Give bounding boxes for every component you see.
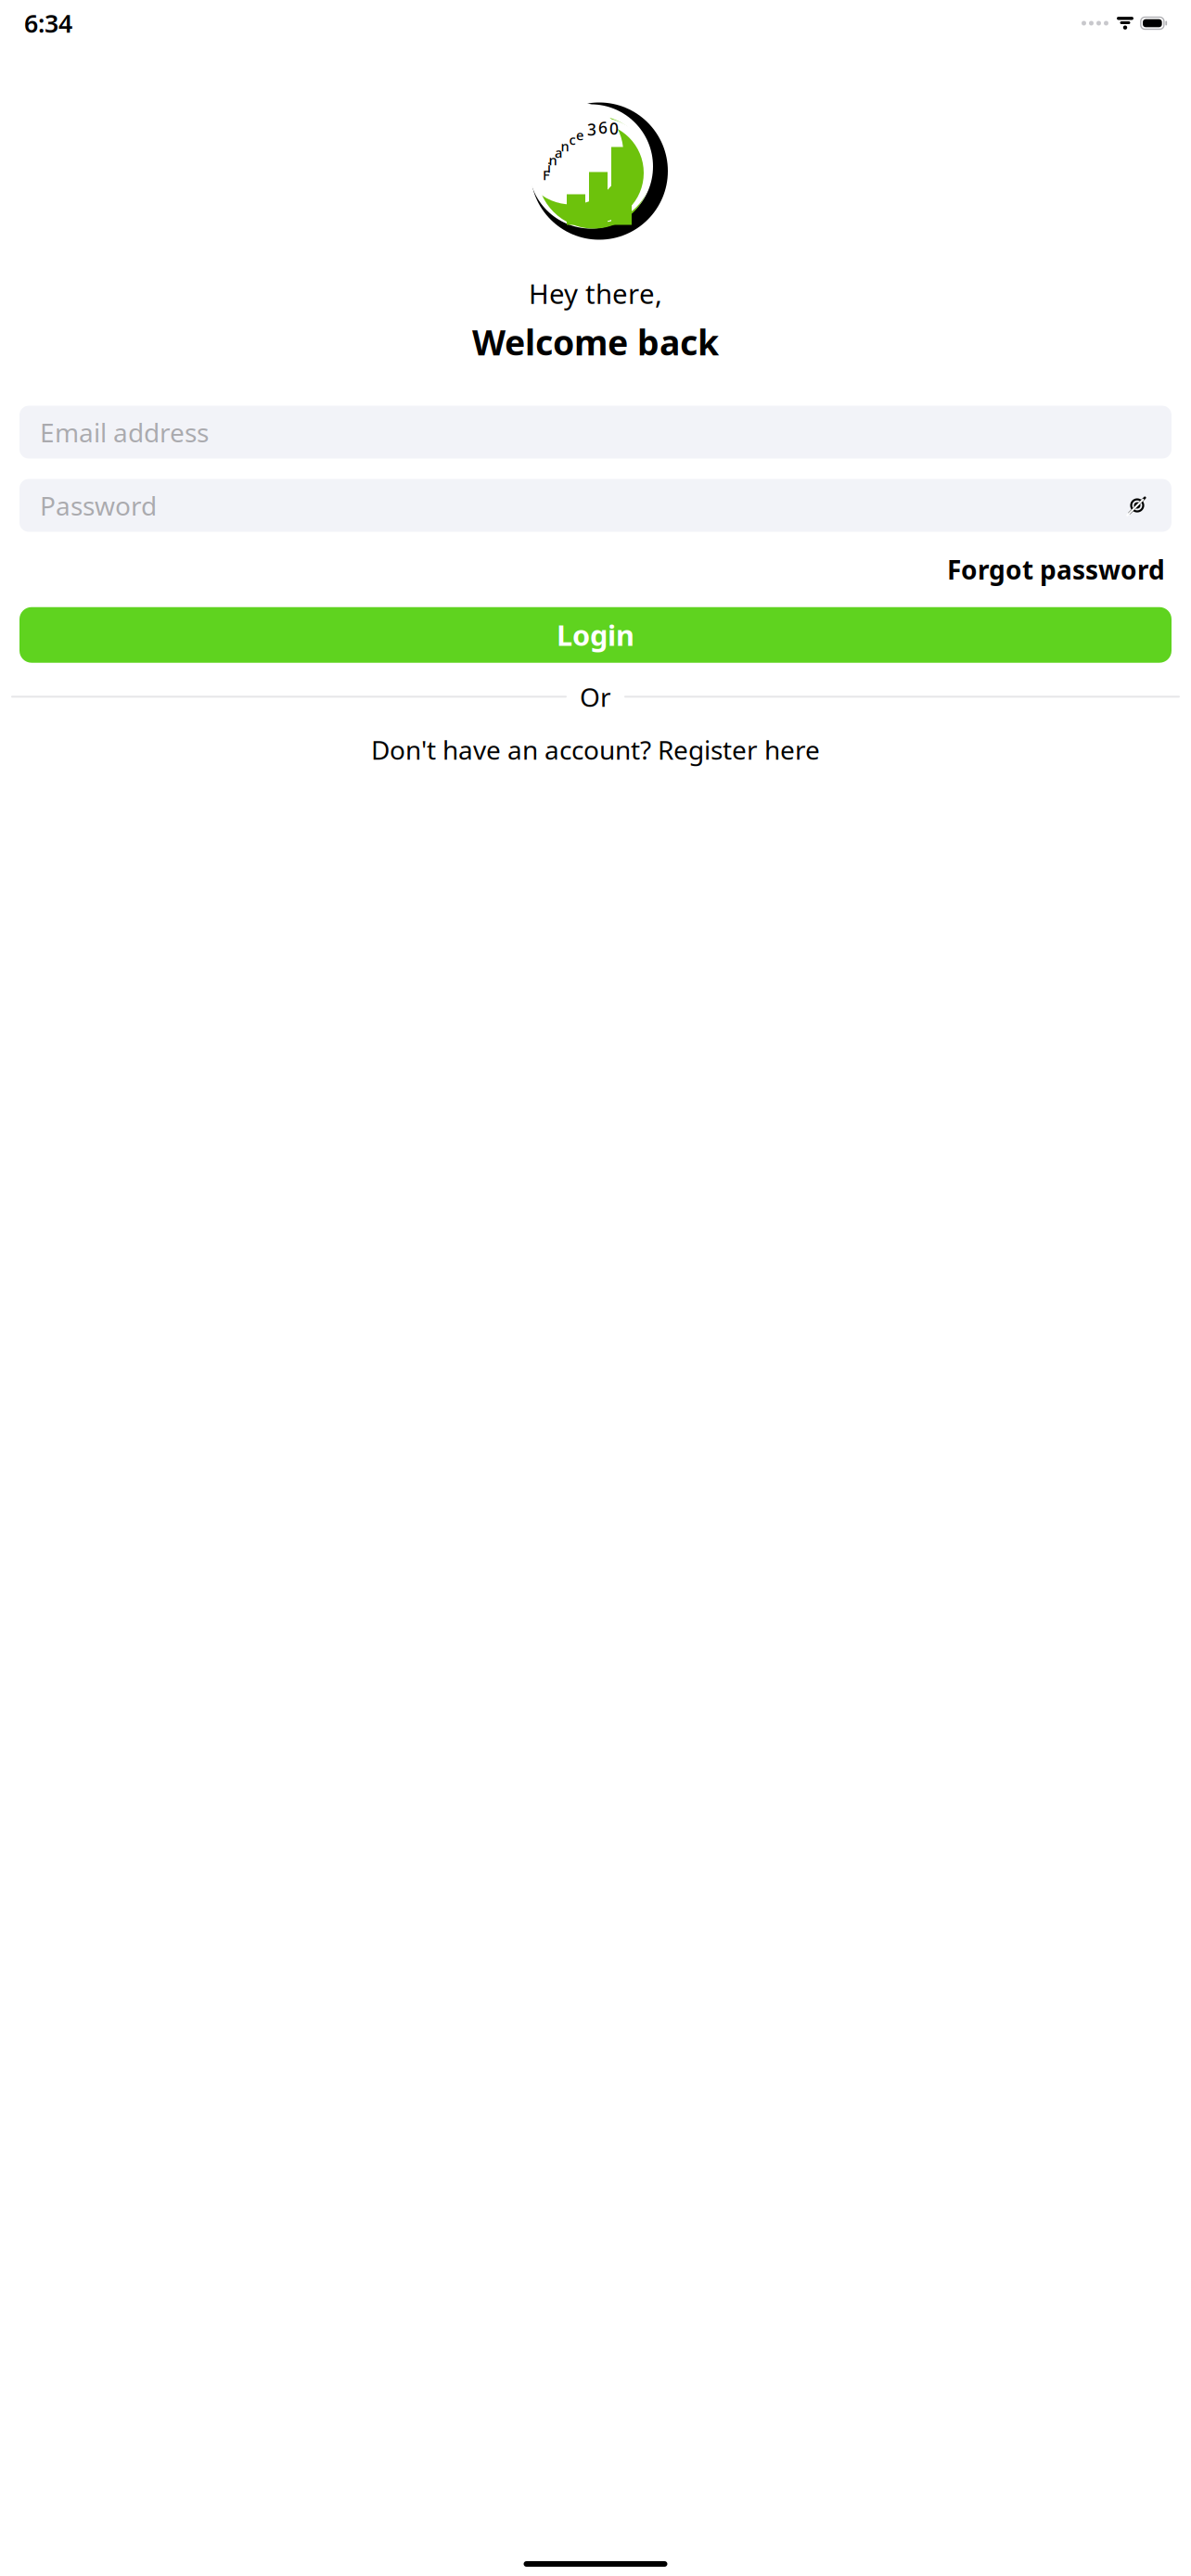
button[interactable]: Show password [1123,491,1151,519]
staticText: c [569,131,576,149]
staticText: Don't have an account? Register here [371,732,820,767]
staticText: n [549,151,557,169]
staticText: n [561,137,569,155]
staticText: 6:34 [24,7,72,40]
staticText: Forgot password [947,552,1165,587]
button[interactable]: Forgot password [947,552,1165,587]
staticText: Or [580,679,611,714]
staticText: Password [40,488,157,523]
staticText: Hey there, [529,275,662,312]
staticText: F [543,166,550,184]
staticText: i [547,158,551,176]
staticText: Login [557,616,634,654]
staticText: a [555,144,562,162]
staticText: Welcome back [472,319,719,365]
button[interactable]: Email address [19,406,1172,459]
staticText: 3 [587,119,596,140]
button[interactable]: Don't have an account? Register here [19,727,1172,773]
staticText: 0 [609,118,619,139]
staticText: 6 [598,117,608,138]
staticText: e [576,126,583,144]
button[interactable]: Login [19,607,1172,663]
staticText: Email address [40,415,209,449]
